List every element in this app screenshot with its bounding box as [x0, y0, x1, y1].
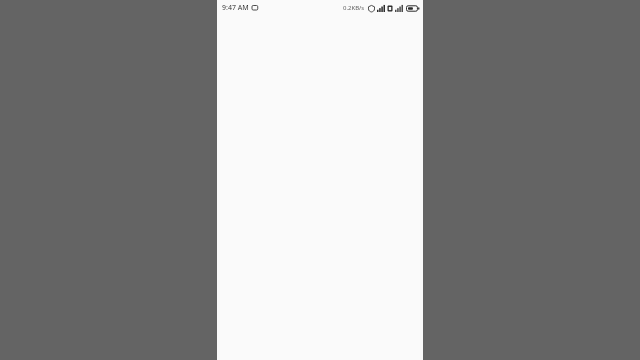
staticText: 0.2KB/s: [343, 4, 365, 12]
staticText: 9:47 AM: [222, 3, 249, 13]
